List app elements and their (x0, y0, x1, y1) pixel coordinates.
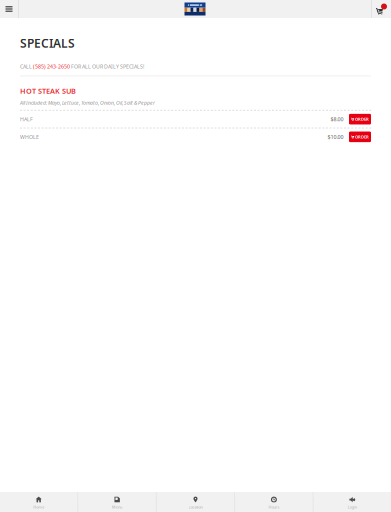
button[interactable]: Location (157, 492, 234, 512)
staticText: SPECIALS (20, 35, 75, 51)
button[interactable]: Hours (235, 492, 313, 512)
button[interactable]: Home (0, 492, 77, 512)
button[interactable]: ORDER (349, 114, 371, 124)
staticText: ORDER (355, 116, 369, 122)
staticText: Login (348, 504, 357, 510)
staticText: (585) 243-2650 (33, 63, 70, 70)
button[interactable]: Menu (78, 492, 156, 512)
staticText: $8.00 (330, 115, 343, 123)
staticText: Home (33, 504, 44, 510)
staticText: CALL (20, 63, 33, 70)
staticText: HOT STEAK SUB (20, 86, 76, 96)
button[interactable]: Cart (372, 3, 391, 14)
staticText: Location (188, 504, 202, 510)
staticText: Hours (268, 504, 279, 510)
staticText: HALF (20, 116, 33, 123)
button[interactable]: Menu (0, 0, 18, 18)
staticText: ORDER (355, 134, 369, 140)
staticText: WHOLE (20, 133, 39, 140)
staticText: FOR ALL OUR DAILY SPECIALS! (70, 63, 144, 70)
staticText: Menu (112, 504, 122, 510)
staticText: All Included: Mayo, Lettuce, Tomato, Oni… (20, 99, 155, 106)
staticText: $10.00 (327, 133, 343, 140)
button[interactable]: ORDER (349, 132, 371, 142)
button[interactable]: Login (314, 492, 391, 512)
